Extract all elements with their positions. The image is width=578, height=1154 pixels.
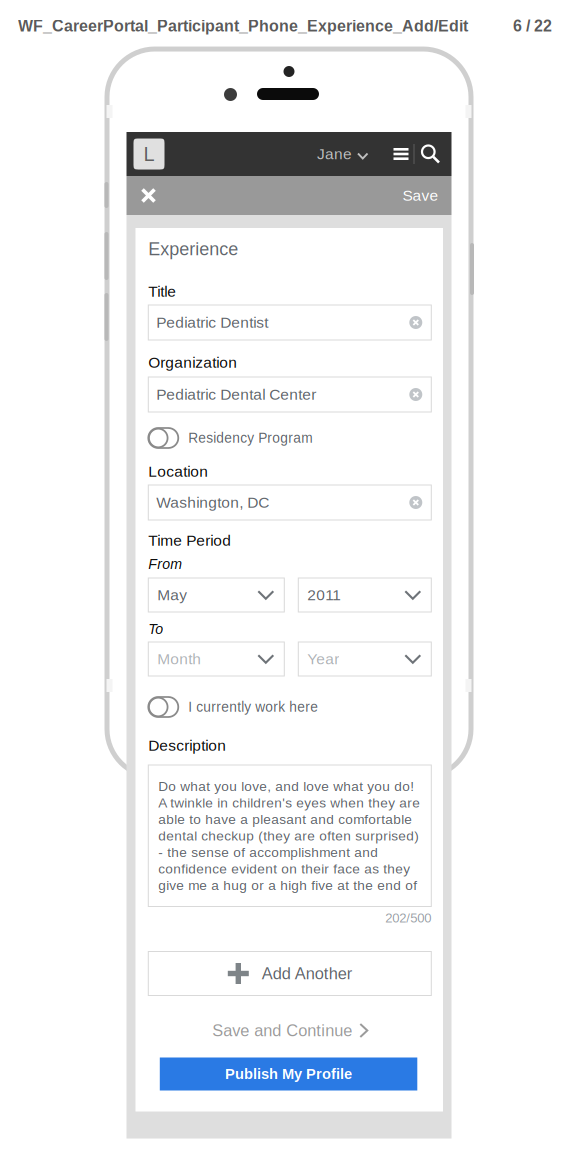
staticText: Year: [307, 650, 339, 668]
staticText: Location: [148, 463, 208, 480]
staticText: Pediatric Dental Center: [156, 386, 316, 403]
button[interactable]: Pediatric Dentist: [148, 305, 431, 340]
button[interactable]: Year: [298, 642, 431, 676]
staticText: I currently work here: [188, 699, 318, 715]
staticText: 202/500: [385, 911, 431, 925]
button[interactable]: Jane: [317, 132, 367, 176]
staticText: Save and Continue: [212, 1021, 352, 1040]
staticText: Residency Program: [188, 430, 312, 446]
staticText: A twinkle in children's eyes when they a…: [158, 795, 420, 810]
staticText: Pediatric Dentist: [156, 314, 268, 331]
staticText: Add Another: [262, 964, 352, 983]
staticText: Month: [157, 650, 201, 668]
staticText: Jane: [317, 145, 352, 163]
staticText: confidence evident on their face as they: [158, 861, 410, 876]
button[interactable]: Add Another: [148, 951, 431, 995]
staticText: From: [148, 556, 182, 572]
staticText: Save: [402, 187, 438, 204]
staticText: Do what you love, and love what you do!: [158, 779, 414, 794]
button[interactable]: Pediatric Dental Center: [148, 377, 431, 412]
staticText: To: [148, 621, 163, 637]
button[interactable]: Washington, DC: [148, 485, 431, 520]
staticText: 2011: [307, 586, 341, 604]
staticText: Description: [148, 737, 226, 754]
button[interactable]: Residency Program: [148, 428, 431, 448]
staticText: dental checkup (they are often surprised…: [158, 828, 419, 843]
button[interactable]: Publish My Profile: [160, 1057, 417, 1090]
staticText: give me a hug or a high five at the end …: [158, 878, 417, 893]
staticText: able to have a pleasant and comfortable: [158, 812, 412, 827]
staticText: - the sense of accomplishment and: [158, 845, 378, 860]
staticText: Publish My Profile: [225, 1066, 352, 1082]
button[interactable]: Home: [133, 138, 164, 169]
button[interactable]: I currently work here: [148, 697, 431, 717]
staticText: Experience: [148, 239, 238, 259]
staticText: Washington, DC: [156, 494, 269, 511]
button[interactable]: 2011: [298, 578, 431, 612]
staticText: May: [157, 586, 187, 604]
button[interactable]: May: [148, 578, 284, 612]
staticText: L: [143, 143, 154, 165]
staticText: Title: [148, 283, 176, 300]
button[interactable]: Search: [414, 132, 446, 176]
staticText: Time Period: [148, 532, 231, 549]
button[interactable]: Close: [134, 176, 162, 215]
button[interactable]: Save and Continue: [148, 1022, 431, 1038]
staticText: WF_CareerPortal_Participant_Phone_Experi…: [18, 17, 468, 35]
button[interactable]: Save: [402, 176, 438, 215]
button[interactable]: Month: [148, 642, 284, 676]
button[interactable]: Menu: [388, 132, 413, 176]
staticText: 6 / 22: [513, 17, 552, 35]
staticText: Organization: [148, 354, 237, 371]
